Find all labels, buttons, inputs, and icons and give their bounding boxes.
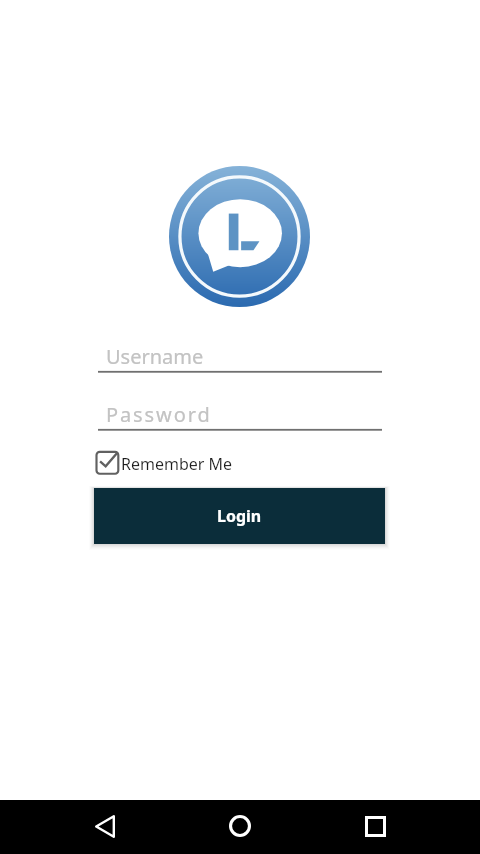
staticText: Remember Me: [121, 453, 233, 475]
button[interactable]: Password: [98, 400, 382, 431]
button[interactable]: Home: [216, 799, 264, 853]
staticText: Login: [217, 505, 262, 527]
button[interactable]: Remember Me: [93, 450, 233, 478]
staticText: Username: [106, 343, 204, 370]
button[interactable]: Back: [81, 799, 129, 853]
staticText: Password: [106, 401, 212, 428]
button[interactable]: Recent apps: [351, 799, 399, 853]
button[interactable]: Username: [98, 342, 382, 373]
button[interactable]: Login: [94, 488, 385, 544]
